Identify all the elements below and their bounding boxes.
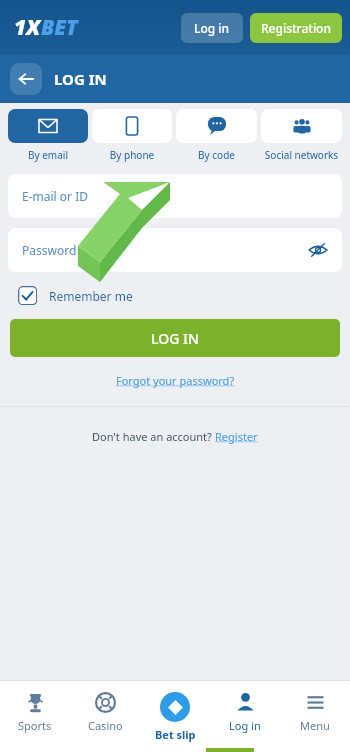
staticText: Register xyxy=(215,429,258,444)
staticText: E-mail or ID xyxy=(22,188,88,204)
staticText: By code xyxy=(176,148,257,162)
staticText: Log in xyxy=(229,718,261,733)
button[interactable]: By email xyxy=(8,109,88,162)
staticText: LOG IN xyxy=(54,69,107,89)
staticText: Log in xyxy=(194,20,230,36)
staticText: Password xyxy=(22,242,77,258)
button[interactable]: E-mail or ID xyxy=(8,174,342,218)
staticText: By email xyxy=(8,148,88,162)
button[interactable]: Forgot your password? xyxy=(116,373,235,388)
button[interactable]: Register xyxy=(215,429,258,444)
button[interactable]: Bet slip xyxy=(140,681,210,752)
staticText: Don't have an account? xyxy=(92,429,215,444)
button[interactable]: Casino xyxy=(70,681,140,752)
staticText: Registration xyxy=(261,20,331,36)
button[interactable]: Log in xyxy=(210,681,280,752)
staticText: By phone xyxy=(92,148,172,162)
button[interactable]: Menu xyxy=(280,681,350,752)
button[interactable]: By phone xyxy=(92,109,172,162)
staticText: Remember me xyxy=(49,288,133,304)
staticText: Casino xyxy=(88,718,123,733)
button[interactable]: By code xyxy=(176,109,257,162)
staticText: LOG IN xyxy=(151,329,199,348)
button[interactable]: Sports xyxy=(0,681,70,752)
staticText: Bet slip xyxy=(155,727,196,742)
button[interactable]: Log in xyxy=(181,13,243,43)
button[interactable]: LOG IN xyxy=(10,319,340,357)
staticText: 1X xyxy=(14,13,41,42)
button[interactable]: Social networks xyxy=(261,109,342,162)
staticText: Sports xyxy=(18,718,52,733)
button[interactable]: Registration xyxy=(250,13,342,43)
button[interactable]: Password xyxy=(8,228,342,272)
staticText: Social networks xyxy=(261,148,342,162)
staticText: BET xyxy=(41,13,78,42)
staticText: Menu xyxy=(300,718,330,733)
button[interactable]: Show password xyxy=(306,238,330,262)
button[interactable]: Back xyxy=(10,63,42,95)
staticText: Forgot your password? xyxy=(116,373,235,388)
button[interactable]: Remember me xyxy=(18,286,133,305)
